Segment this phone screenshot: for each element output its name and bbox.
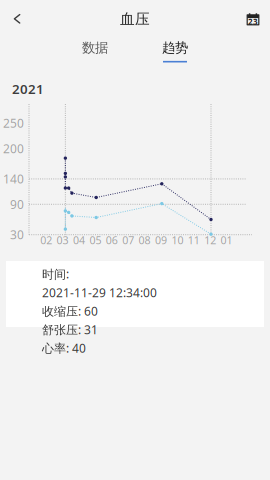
staticText: 12 (204, 233, 216, 247)
staticText: 30 (10, 227, 24, 243)
staticText: 舒张压: 31 (42, 322, 98, 337)
staticText: 11 (188, 233, 200, 247)
staticText: 10 (171, 233, 183, 247)
staticText: 02 (40, 233, 52, 247)
staticText: 心率: 40 (42, 340, 86, 356)
staticText: 07 (122, 233, 134, 247)
staticText: 23 (248, 16, 258, 27)
staticText: 2021 (12, 80, 44, 98)
staticText: 200 (3, 140, 24, 156)
staticText: 01 (221, 233, 233, 247)
staticText: 收缩压: 60 (42, 303, 98, 319)
button[interactable]: 趋势 (140, 39, 210, 62)
staticText: 05 (89, 233, 101, 247)
staticText: 08 (139, 233, 151, 247)
staticText: 03 (57, 233, 69, 247)
button[interactable]: Calendar (238, 4, 268, 34)
staticText: 04 (73, 233, 85, 247)
staticText: 140 (3, 171, 24, 187)
staticText: 血压 (120, 10, 150, 28)
staticText: 趋势 (162, 39, 188, 56)
staticText: 06 (106, 233, 118, 247)
button[interactable]: Back (2, 4, 32, 34)
staticText: 2021-11-29 12:34:00 (42, 284, 157, 300)
staticText: 250 (3, 115, 24, 131)
button[interactable]: 数据 (60, 39, 130, 62)
staticText: 数据 (82, 39, 108, 56)
staticText: 时间: (42, 266, 69, 282)
staticText: 90 (10, 196, 24, 212)
staticText: 09 (155, 233, 167, 247)
